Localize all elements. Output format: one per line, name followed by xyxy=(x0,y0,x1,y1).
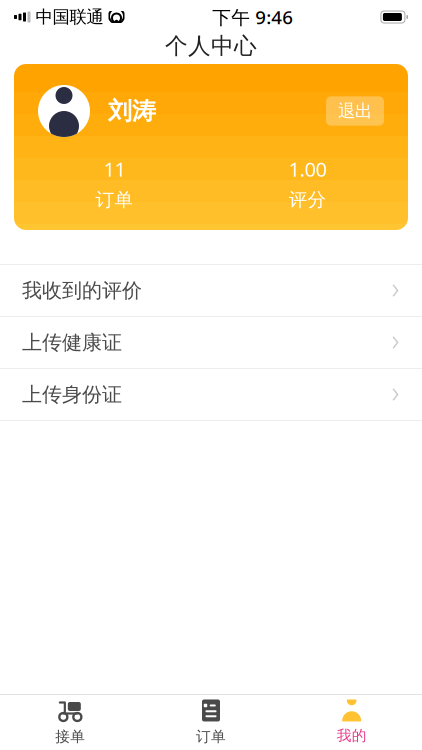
staticText: 退出 xyxy=(338,100,372,122)
staticText: 中国联通 xyxy=(35,6,103,28)
staticText: 接单 xyxy=(55,727,85,745)
staticText: 我的 xyxy=(337,726,367,744)
staticText: 评分 xyxy=(288,188,326,211)
button[interactable]: 接单 xyxy=(0,691,141,750)
staticText: 1.00 xyxy=(288,156,326,182)
button[interactable]: 上传身份证 xyxy=(0,369,422,421)
button[interactable]: 我的 xyxy=(281,692,422,750)
button[interactable]: 退出 xyxy=(326,96,384,126)
button[interactable]: 订单 xyxy=(141,691,281,750)
staticText: 订单 xyxy=(196,727,226,745)
staticText: 11 xyxy=(103,156,125,182)
button[interactable]: 上传健康证 xyxy=(0,317,422,369)
staticText: 下午 9:46 xyxy=(212,5,293,29)
staticText: 刘涛 xyxy=(108,96,156,126)
staticText: 我收到的评价 xyxy=(22,278,142,303)
staticText: 上传健康证 xyxy=(22,330,122,355)
button[interactable]: 我收到的评价 xyxy=(0,265,422,317)
staticText: 订单 xyxy=(95,188,133,211)
staticText: 上传身份证 xyxy=(22,382,122,407)
staticText: 个人中心 xyxy=(165,32,257,60)
